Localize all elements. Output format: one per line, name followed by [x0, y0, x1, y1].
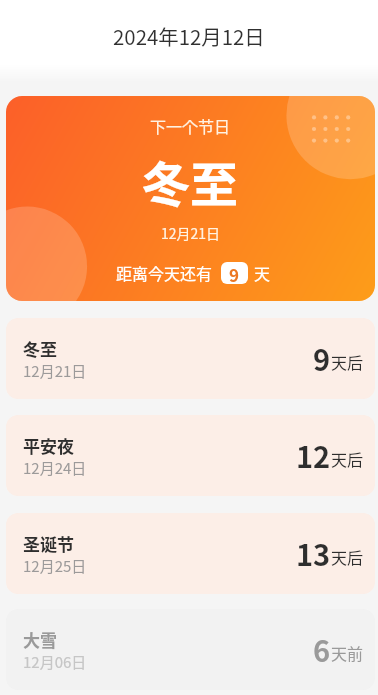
staticText: 圣诞节: [23, 531, 74, 556]
staticText: 天后: [331, 447, 364, 470]
staticText: 冬至: [142, 146, 239, 216]
button[interactable]: 平安夜: [6, 415, 375, 496]
staticText: 12月24日: [23, 457, 87, 479]
staticText: 6: [313, 628, 331, 670]
staticText: 13: [296, 532, 331, 574]
staticText: 天: [254, 261, 271, 284]
button[interactable]: 下一个节日: [6, 96, 375, 301]
staticText: 大雪: [23, 627, 57, 652]
staticText: 12: [296, 434, 331, 476]
staticText: 距离今天还有: [116, 261, 213, 284]
staticText: 天前: [331, 641, 364, 664]
staticText: 12月25日: [23, 555, 87, 577]
button[interactable]: 大雪: [6, 609, 375, 690]
staticText: 天后: [331, 545, 364, 568]
button[interactable]: 冬至: [6, 318, 375, 399]
staticText: 2024年12月12日: [113, 21, 265, 51]
staticText: 冬至: [23, 336, 57, 361]
button[interactable]: 圣诞节: [6, 513, 375, 594]
staticText: 9: [229, 262, 240, 284]
staticText: 下一个节日: [150, 114, 231, 137]
staticText: 9: [313, 337, 331, 379]
staticText: 12月21日: [161, 223, 221, 243]
staticText: 天后: [331, 350, 364, 373]
staticText: 12月21日: [23, 360, 87, 382]
staticText: 平安夜: [23, 433, 74, 458]
staticText: 12月06日: [23, 651, 87, 673]
